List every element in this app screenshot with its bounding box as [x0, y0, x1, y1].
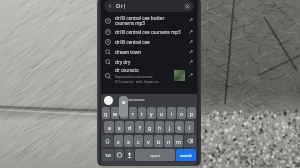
staticText: search — [180, 153, 192, 158]
button[interactable]: f — [135, 121, 144, 133]
button[interactable]: m — [174, 135, 183, 147]
button[interactable]: Back — [104, 0, 194, 12]
button[interactable]: o — [177, 107, 186, 119]
staticText: m — [176, 138, 181, 145]
staticText: v — [147, 138, 150, 145]
button[interactable]: i — [167, 107, 176, 119]
button[interactable]: dr/ill central cee — [101, 37, 197, 47]
button[interactable]: t — [138, 107, 146, 119]
button[interactable]: dr csuracio — [101, 67, 197, 84]
button[interactable]: s — [115, 121, 124, 133]
staticText: z — [117, 138, 120, 145]
button[interactable]: w — [111, 107, 119, 119]
other: Insert suggestion — [188, 60, 193, 65]
other: Insert suggestion — [188, 50, 193, 55]
button[interactable]: dry dry — [101, 57, 197, 67]
button[interactable]: k — [175, 121, 184, 133]
button[interactable]: search — [176, 149, 196, 161]
staticText: c — [137, 138, 140, 145]
button[interactable]: dr/ill central cee butter csursens mp3 — [101, 14, 197, 27]
staticText: r — [132, 110, 135, 117]
staticText: D·Csuracio · инб. бритсто… — [115, 79, 161, 84]
button[interactable]: 123 — [102, 149, 114, 161]
staticText: Европейка околотика — [115, 74, 153, 79]
button[interactable]: j — [165, 121, 174, 133]
staticText: space — [150, 153, 161, 158]
staticText: Dr| — [116, 2, 127, 10]
staticText: j — [169, 124, 171, 131]
staticText: u — [160, 110, 164, 117]
button[interactable]: v — [144, 135, 153, 147]
button[interactable]: c — [134, 135, 143, 147]
button[interactable]: Emoji — [115, 149, 124, 161]
staticText: p — [190, 110, 194, 117]
staticText: dream town — [115, 49, 185, 55]
staticText: b — [157, 138, 161, 145]
staticText: e — [122, 98, 126, 106]
button[interactable]: вжопплень — [122, 97, 145, 103]
staticText: dr/ill central cee — [115, 39, 185, 45]
button[interactable]: Shift — [102, 135, 113, 147]
button[interactable]: dream town — [101, 47, 197, 57]
button[interactable]: dr/ill central cee csursens mp3 — [101, 27, 197, 37]
staticText: s — [118, 124, 121, 131]
staticText: l — [189, 124, 191, 131]
staticText: 123 — [105, 153, 112, 158]
staticText: o — [180, 110, 184, 117]
staticText: dr csuracio — [115, 67, 139, 73]
button[interactable]: g — [145, 121, 154, 133]
button[interactable]: Voice input — [125, 149, 134, 161]
button[interactable]: Clear — [184, 3, 191, 10]
staticText: i — [171, 110, 173, 117]
button[interactable]: n — [164, 135, 173, 147]
button[interactable]: e — [120, 107, 128, 119]
staticText: d — [128, 124, 132, 131]
other: Insert suggestion — [188, 30, 193, 35]
button[interactable]: u — [157, 107, 166, 119]
button[interactable]: h — [155, 121, 164, 133]
staticText: n — [167, 138, 171, 145]
staticText: w — [113, 110, 118, 117]
other: Insert suggestion — [188, 18, 193, 23]
staticText: dr/ill central cee butter csursens mp3 — [115, 15, 185, 27]
button[interactable]: r — [129, 107, 137, 119]
staticText: h — [158, 124, 162, 131]
button[interactable]: a — [104, 121, 114, 133]
staticText: y — [150, 110, 153, 117]
button[interactable]: x — [124, 135, 133, 147]
staticText: dr/ill central cee csursens mp3 — [115, 29, 185, 35]
button[interactable]: p — [187, 107, 196, 119]
staticText: g — [148, 124, 152, 131]
staticText: t — [141, 110, 143, 117]
staticText: dry dry — [115, 59, 185, 65]
staticText: a — [108, 124, 111, 131]
button[interactable]: Backspace — [184, 135, 196, 147]
button[interactable]: q — [102, 107, 110, 119]
staticText: k — [178, 124, 181, 131]
staticText: f — [139, 124, 141, 131]
button[interactable]: space — [135, 149, 175, 161]
button[interactable]: d — [125, 121, 134, 133]
button[interactable]: Google — [104, 96, 113, 105]
staticText: x — [127, 138, 130, 145]
other: Insert suggestion — [188, 40, 193, 45]
button[interactable]: y — [147, 107, 156, 119]
button[interactable]: b — [154, 135, 163, 147]
button[interactable]: l — [185, 121, 194, 133]
other: Insert suggestion — [188, 73, 193, 78]
button[interactable]: z — [114, 135, 123, 147]
other: Back — [107, 3, 113, 9]
staticText: q — [104, 110, 108, 117]
